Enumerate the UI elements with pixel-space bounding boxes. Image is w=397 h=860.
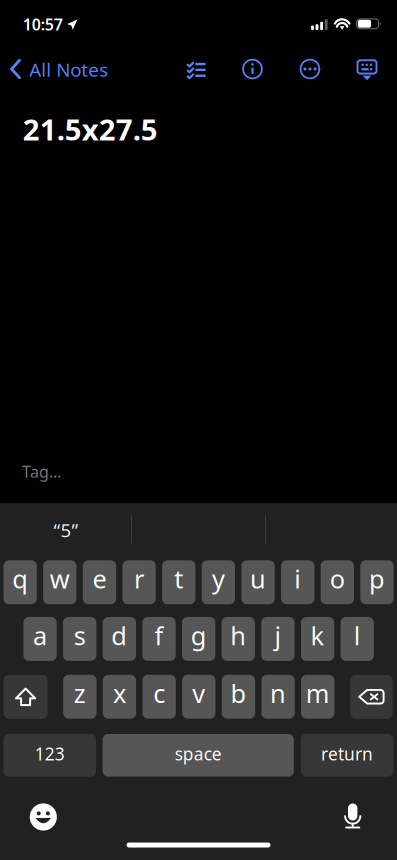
button[interactable]: 123	[4, 734, 96, 777]
staticText: x	[113, 676, 126, 710]
button[interactable]: e	[83, 560, 116, 604]
button[interactable]: v	[182, 675, 215, 719]
button[interactable]: t	[162, 560, 195, 604]
button[interactable]: More options	[288, 48, 332, 90]
button[interactable]: g	[182, 617, 215, 661]
button[interactable]: a	[23, 617, 57, 661]
staticText: k	[311, 619, 325, 652]
staticText: v	[192, 676, 205, 710]
button[interactable]: c	[142, 675, 176, 719]
button[interactable]: Shift	[4, 675, 48, 719]
staticText: g	[191, 619, 207, 652]
staticText: w	[50, 562, 70, 595]
staticText: i	[294, 562, 301, 595]
button[interactable]: return	[301, 734, 393, 777]
button[interactable]: w	[43, 560, 76, 604]
button[interactable]: s	[63, 617, 96, 661]
staticText: y	[212, 562, 225, 595]
staticText: z	[74, 676, 86, 710]
button[interactable]: p	[360, 560, 394, 604]
button[interactable]: u	[241, 560, 275, 604]
button[interactable]: m	[301, 675, 334, 719]
button[interactable]: i	[281, 560, 314, 604]
staticText: f	[154, 619, 163, 652]
staticText: m	[306, 676, 330, 710]
button[interactable]: q	[3, 560, 37, 604]
button[interactable]: Hide Keyboard	[345, 49, 389, 91]
button[interactable]: Delete	[350, 675, 393, 719]
staticText: b	[230, 676, 246, 710]
staticText: Tag...	[22, 461, 61, 482]
staticText: r	[134, 562, 144, 595]
button[interactable]: Info	[230, 48, 274, 90]
button[interactable]: h	[222, 617, 255, 661]
staticText: u	[250, 562, 266, 595]
staticText: j	[274, 619, 281, 652]
button[interactable]: Dictate	[331, 794, 375, 838]
button[interactable]: b	[222, 675, 255, 719]
staticText: o	[330, 562, 345, 595]
button[interactable]: y	[202, 560, 235, 604]
staticText: n	[270, 676, 286, 710]
button[interactable]: j	[261, 617, 295, 661]
staticText: d	[111, 619, 127, 652]
staticText: 123	[35, 742, 65, 765]
staticText: l	[354, 619, 361, 652]
button[interactable]: k	[301, 617, 334, 661]
button[interactable]: l	[341, 617, 374, 661]
button[interactable]: All Notes	[5, 49, 105, 89]
staticText: return	[321, 742, 373, 765]
staticText: s	[74, 619, 86, 652]
staticText: space	[175, 742, 222, 765]
button[interactable]: o	[321, 560, 354, 604]
button[interactable]: space	[103, 734, 294, 777]
button[interactable]: Checklist	[174, 48, 218, 90]
staticText: t	[174, 562, 183, 595]
staticText: p	[369, 562, 385, 595]
button[interactable]: r	[122, 560, 156, 604]
button[interactable]: Emoji	[21, 795, 65, 839]
staticText: c	[153, 676, 165, 710]
button[interactable]: d	[103, 617, 136, 661]
button[interactable]: n	[261, 675, 295, 719]
button[interactable]: x	[103, 675, 136, 719]
staticText: 21.5x27.5	[23, 109, 158, 148]
staticText: 10:57	[23, 14, 63, 35]
staticText: h	[230, 619, 246, 652]
staticText: a	[33, 619, 47, 652]
staticText: q	[12, 562, 28, 595]
staticText: “5”	[53, 518, 78, 542]
staticText: e	[92, 562, 106, 595]
staticText: All Notes	[29, 57, 108, 82]
button[interactable]: f	[142, 617, 176, 661]
button[interactable]: z	[63, 675, 96, 719]
